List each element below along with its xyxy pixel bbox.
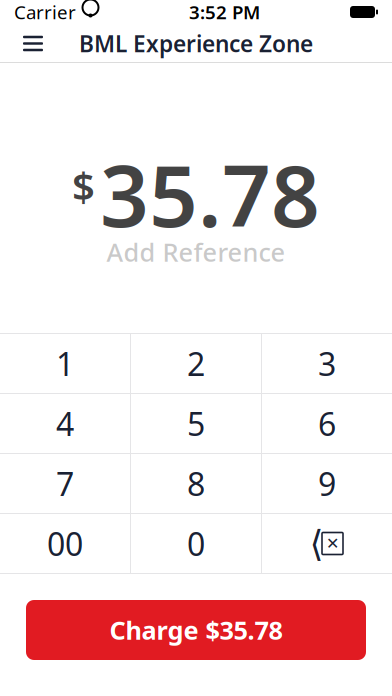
staticText: Charge $35.78	[109, 613, 282, 647]
staticText: 8	[187, 462, 205, 505]
button[interactable]: Add Reference	[96, 231, 295, 273]
staticText: Add Reference	[106, 235, 285, 269]
staticText: 9	[318, 462, 336, 505]
button[interactable]: 00	[0, 514, 130, 573]
staticText: 0	[187, 522, 205, 565]
staticText: 35.78	[100, 137, 320, 251]
staticText: 3:52 PM	[189, 0, 260, 24]
staticText: 6	[318, 402, 336, 445]
staticText: 3	[318, 342, 336, 385]
button[interactable]: 1	[0, 334, 130, 393]
staticText: BML Experience Zone	[79, 28, 313, 58]
button[interactable]: 7	[0, 454, 130, 513]
button[interactable]: Delete	[262, 514, 392, 573]
staticText: Carrier	[14, 0, 76, 24]
staticText: $	[72, 159, 95, 212]
staticText: ⟨	[309, 523, 323, 564]
staticText: ✕	[326, 534, 339, 553]
button[interactable]: Menu	[11, 24, 55, 63]
staticText: 00	[47, 522, 83, 565]
staticText: 2	[187, 342, 205, 385]
button[interactable]: 0	[131, 514, 261, 573]
staticText: 5	[187, 402, 205, 445]
button[interactable]: 2	[131, 334, 261, 393]
button[interactable]: 4	[0, 394, 130, 453]
button[interactable]: 5	[131, 394, 261, 453]
staticText: 7	[56, 462, 74, 505]
button[interactable]: Charge $35.78	[26, 600, 366, 660]
button[interactable]: 8	[131, 454, 261, 513]
button[interactable]: 6	[262, 394, 392, 453]
staticText: 1	[56, 342, 74, 385]
staticText: 4	[56, 402, 74, 445]
button[interactable]: 9	[262, 454, 392, 513]
button[interactable]: 3	[262, 334, 392, 393]
